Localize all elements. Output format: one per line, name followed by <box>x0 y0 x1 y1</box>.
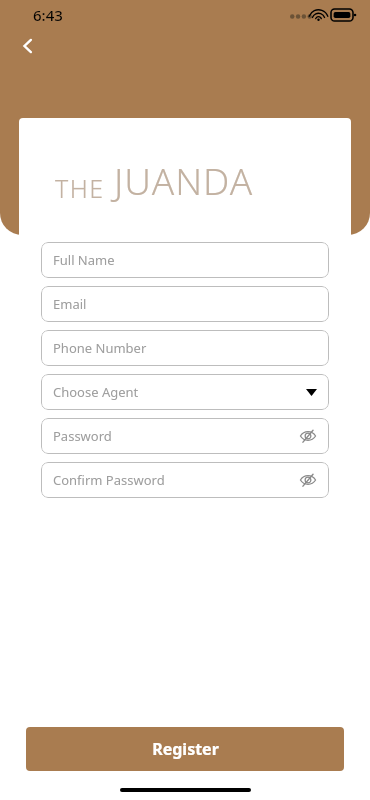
staticText: Full Name <box>53 251 115 269</box>
staticText: THE <box>55 171 105 205</box>
other: Show password <box>299 427 317 445</box>
other: Show password <box>299 471 317 489</box>
button[interactable]: Full Name <box>41 242 329 278</box>
staticText: Phone Number <box>53 339 147 357</box>
staticText: 6:43 <box>33 5 63 25</box>
button[interactable]: Confirm Password <box>41 462 329 498</box>
button[interactable]: Choose Agent <box>41 374 329 410</box>
staticText: Choose Agent <box>53 383 139 401</box>
staticText: Email <box>53 295 87 313</box>
staticText: Confirm Password <box>53 471 165 489</box>
staticText: Register <box>152 738 219 760</box>
button[interactable]: Password <box>41 418 329 454</box>
button[interactable]: Back <box>10 28 46 64</box>
button[interactable]: Email <box>41 286 329 322</box>
button[interactable]: Register <box>26 727 344 771</box>
staticText: JUANDA <box>114 155 254 205</box>
staticText: Password <box>53 427 112 445</box>
button[interactable]: Phone Number <box>41 330 329 366</box>
